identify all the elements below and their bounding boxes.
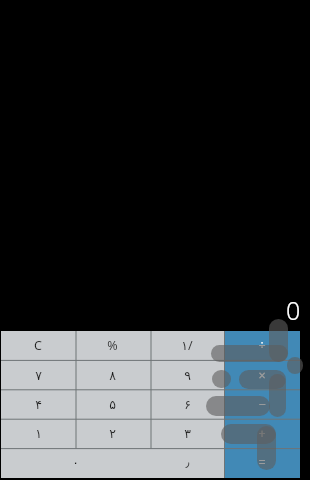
- staticText: ۹: [184, 368, 191, 383]
- button[interactable]: ۹: [150, 361, 224, 391]
- staticText: ÷: [258, 337, 266, 354]
- button[interactable]: ۳: [150, 420, 224, 449]
- button[interactable]: =: [224, 449, 300, 478]
- staticText: ۷: [35, 368, 42, 383]
- button[interactable]: ۱/: [150, 331, 224, 361]
- staticText: ۰: [72, 455, 79, 470]
- button[interactable]: ۴: [1, 391, 75, 420]
- staticText: =: [258, 454, 266, 471]
- staticText: 0: [286, 293, 301, 327]
- staticText: ۸: [109, 368, 116, 383]
- staticText: ۲: [109, 426, 116, 441]
- staticText: ۳: [184, 426, 191, 441]
- button[interactable]: ×: [224, 361, 300, 391]
- staticText: ×: [258, 367, 266, 384]
- button[interactable]: +: [224, 420, 300, 449]
- staticText: ۶: [184, 397, 191, 412]
- staticText: ۵: [109, 397, 116, 412]
- button[interactable]: ۶: [150, 391, 224, 420]
- button[interactable]: ۱: [1, 420, 75, 449]
- button[interactable]: ÷: [224, 331, 300, 361]
- staticText: ۴: [35, 397, 42, 412]
- button[interactable]: ۵: [75, 391, 150, 420]
- button[interactable]: %: [75, 331, 150, 361]
- button[interactable]: ٫: [150, 449, 224, 478]
- staticText: %: [107, 337, 118, 354]
- staticText: ۱/: [181, 337, 193, 354]
- button[interactable]: C: [1, 331, 75, 361]
- staticText: C: [34, 337, 42, 354]
- staticText: ٫: [185, 455, 190, 470]
- staticText: +: [258, 425, 266, 442]
- button[interactable]: −: [224, 391, 300, 420]
- button[interactable]: ۲: [75, 420, 150, 449]
- button[interactable]: ۰: [1, 449, 150, 478]
- staticText: ۱: [35, 426, 42, 441]
- staticText: −: [258, 396, 266, 413]
- button[interactable]: ۸: [75, 361, 150, 391]
- button[interactable]: ۷: [1, 361, 75, 391]
